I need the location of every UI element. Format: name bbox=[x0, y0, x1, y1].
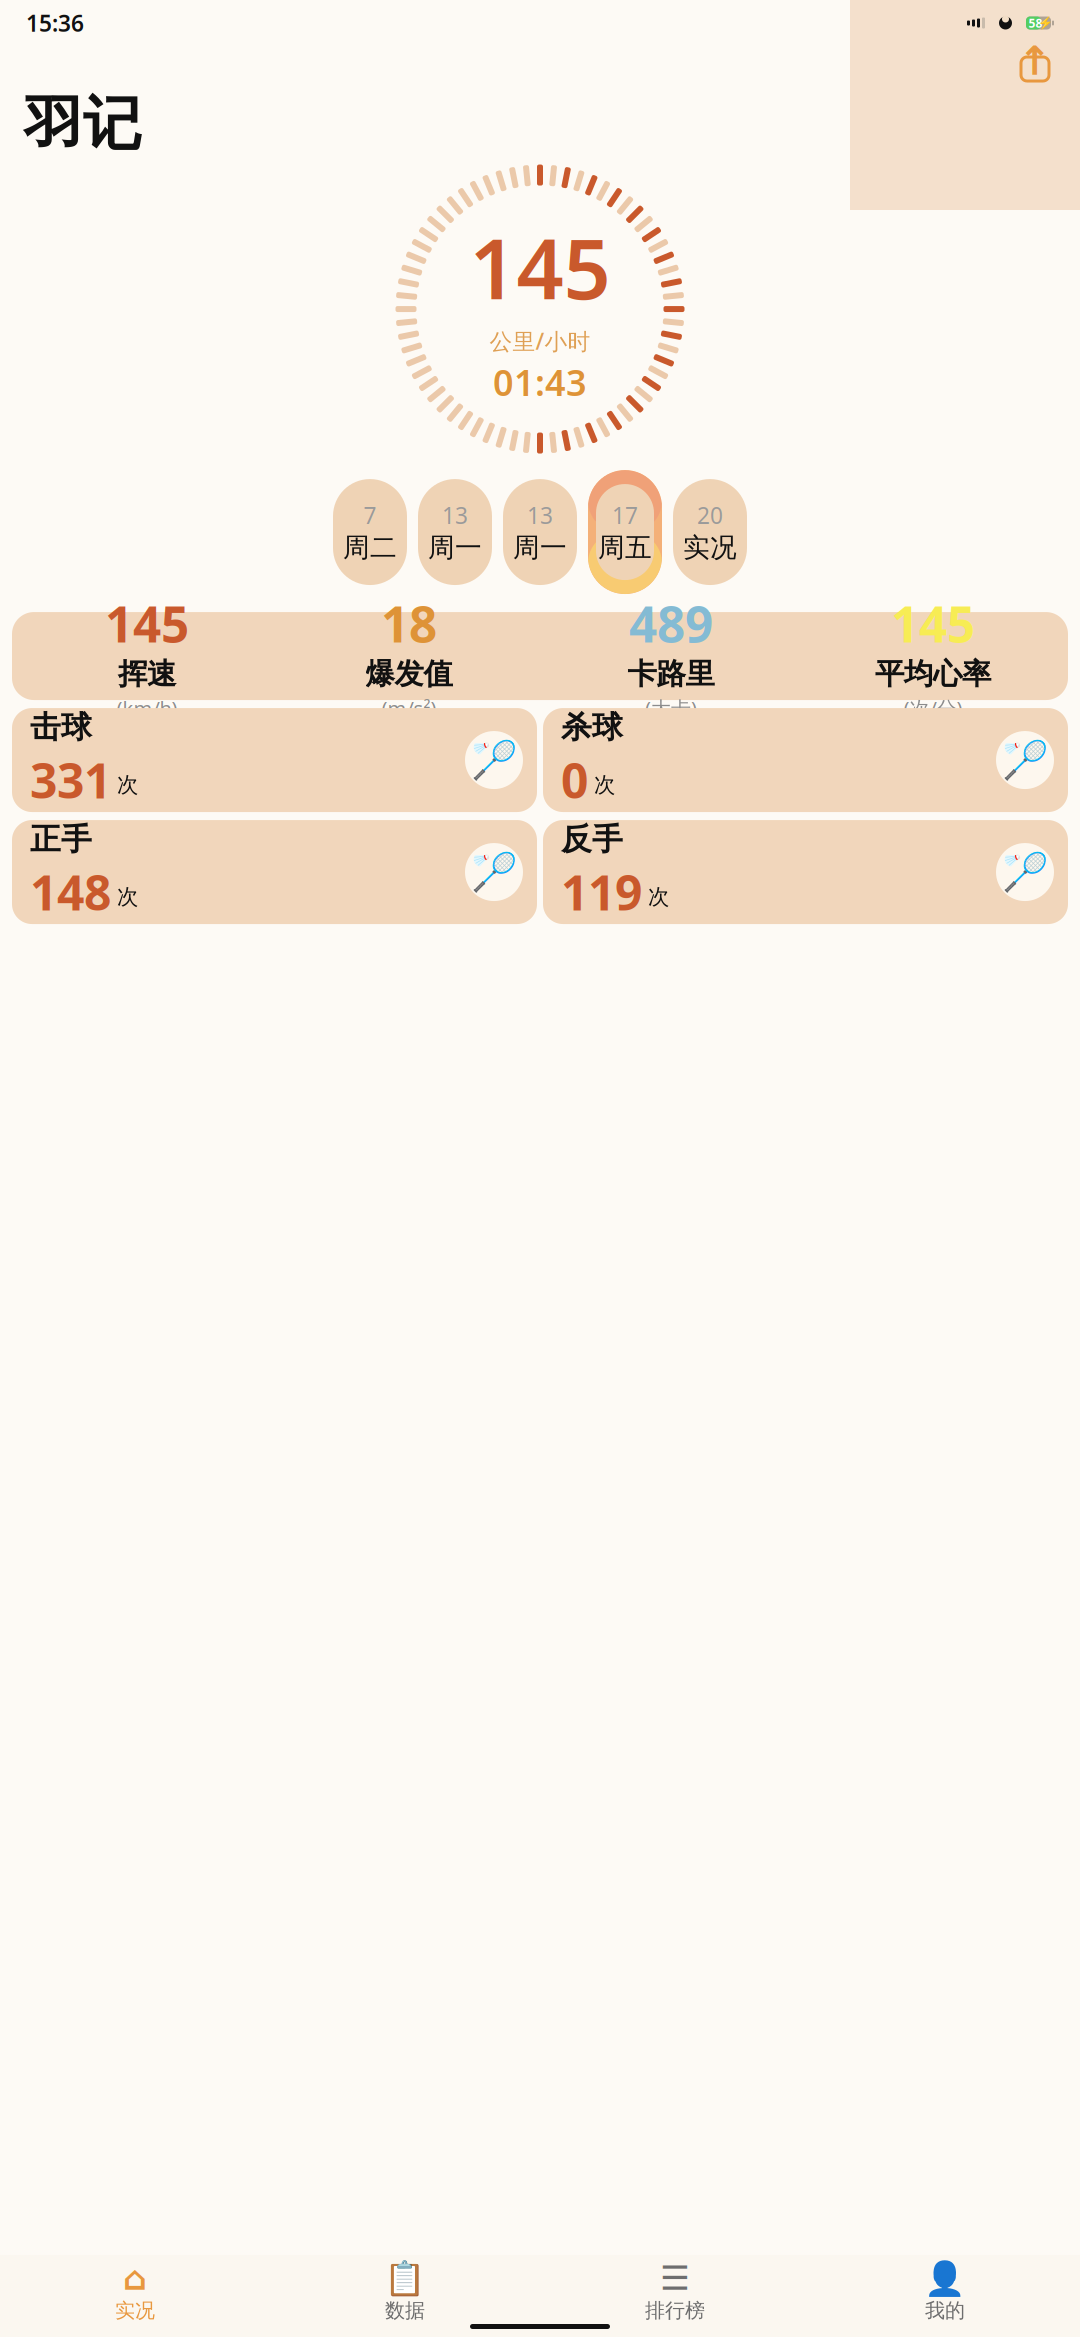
staticText: (km/h) bbox=[116, 695, 177, 722]
staticText: 周二 bbox=[343, 531, 397, 564]
button[interactable]: 分享 bbox=[1012, 40, 1058, 86]
staticText: ☰ bbox=[660, 2259, 690, 2297]
staticText: 公里/小时 bbox=[489, 326, 590, 356]
staticText: 次 bbox=[594, 772, 615, 798]
staticText: 📋 bbox=[384, 2259, 426, 2297]
staticText: 次 bbox=[648, 884, 669, 910]
staticText: 实况 bbox=[683, 531, 737, 564]
button[interactable]: 反手 bbox=[543, 820, 1068, 924]
staticText: ⌂ bbox=[123, 2259, 147, 2297]
staticText: 周一 bbox=[428, 531, 482, 564]
staticText: 击球 bbox=[30, 708, 92, 746]
button[interactable]: 正手 bbox=[12, 820, 537, 924]
staticText: 0 bbox=[561, 748, 588, 812]
staticText: 🏸 bbox=[1002, 851, 1048, 893]
staticText: 17 bbox=[612, 500, 638, 530]
staticText: 🏸 bbox=[1002, 739, 1048, 781]
staticText: 排行榜 bbox=[645, 2298, 705, 2323]
staticText: 羽记 bbox=[24, 88, 142, 160]
staticText: (次/分) bbox=[903, 695, 962, 722]
staticText: 数据 bbox=[385, 2298, 425, 2323]
button[interactable]: ☰ bbox=[540, 2262, 810, 2324]
staticText: 杀球 bbox=[561, 708, 623, 746]
staticText: 148 bbox=[30, 860, 111, 924]
button[interactable]: 👤 bbox=[810, 2262, 1080, 2324]
staticText: 145 bbox=[891, 590, 975, 656]
staticText: (m/s²) bbox=[381, 695, 436, 722]
button[interactable]: 击球 bbox=[12, 708, 537, 812]
button[interactable]: 7 bbox=[330, 470, 410, 594]
staticText: 58 bbox=[1028, 15, 1042, 31]
staticText: 145 bbox=[469, 212, 610, 322]
button[interactable]: 📋 bbox=[270, 2262, 540, 2324]
staticText: 489 bbox=[629, 590, 713, 656]
staticText: 20 bbox=[697, 500, 723, 530]
staticText: ↑ bbox=[1018, 38, 1052, 84]
button[interactable]: 20 bbox=[670, 470, 750, 594]
staticText: 119 bbox=[561, 860, 642, 924]
staticText: 反手 bbox=[561, 820, 623, 858]
staticText: 我的 bbox=[925, 2298, 965, 2323]
staticText: 🏸 bbox=[471, 739, 517, 781]
staticText: 次 bbox=[117, 772, 138, 798]
button[interactable]: ⌂ bbox=[0, 2262, 270, 2324]
staticText: 13 bbox=[442, 500, 468, 530]
staticText: 01:43 bbox=[493, 358, 587, 406]
staticText: 7 bbox=[363, 500, 376, 530]
staticText: 15:36 bbox=[26, 8, 84, 38]
staticText: 爆发值 bbox=[365, 656, 452, 692]
staticText: 周一 bbox=[513, 531, 567, 564]
staticText: 331 bbox=[30, 748, 111, 812]
staticText: 周五 bbox=[598, 531, 652, 564]
staticText: 次 bbox=[117, 884, 138, 910]
staticText: 145 bbox=[105, 590, 189, 656]
button[interactable]: 13 bbox=[415, 470, 495, 594]
button[interactable]: 杀球 bbox=[543, 708, 1068, 812]
staticText: ⚡ bbox=[1038, 16, 1053, 30]
button[interactable]: 13 bbox=[500, 470, 580, 594]
staticText: 卡路里 bbox=[627, 656, 714, 692]
staticText: 👤 bbox=[924, 2259, 966, 2297]
staticText: 18 bbox=[381, 590, 437, 656]
button[interactable]: 17 bbox=[585, 470, 665, 594]
staticText: 实况 bbox=[115, 2298, 155, 2323]
staticText: 🏸 bbox=[471, 851, 517, 893]
staticText: 正手 bbox=[30, 820, 92, 858]
staticText: 平均心率 bbox=[875, 656, 991, 692]
staticText: 挥速 bbox=[118, 656, 176, 692]
staticText: (大卡) bbox=[645, 695, 697, 722]
staticText: 13 bbox=[527, 500, 553, 530]
